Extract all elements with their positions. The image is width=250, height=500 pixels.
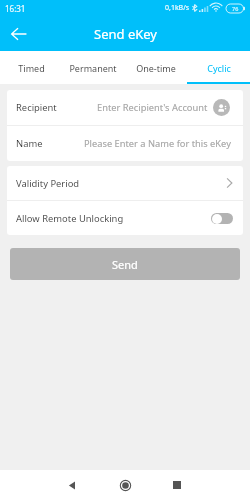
- button[interactable]: Pick contact: [213, 99, 230, 116]
- button[interactable]: Name: [7, 126, 243, 161]
- staticText: Send eKey: [94, 25, 157, 43]
- button[interactable]: Recents: [162, 470, 192, 500]
- staticText: One-time: [136, 62, 176, 74]
- button[interactable]: Validity Period: [7, 166, 243, 200]
- staticText: 76: [232, 5, 239, 12]
- button[interactable]: Back: [0, 16, 36, 51]
- button[interactable]: Send: [10, 248, 240, 280]
- staticText: Name: [16, 137, 43, 150]
- staticText: Permanent: [69, 62, 117, 74]
- staticText: Validity Period: [16, 177, 80, 190]
- staticText: Cyclic: [207, 62, 231, 74]
- staticText: Enter Recipient's Account: [97, 101, 208, 114]
- staticText: Send: [112, 257, 138, 272]
- button[interactable]: Home: [110, 470, 140, 500]
- button[interactable]: Allow Remote Unlocking: [7, 201, 243, 235]
- button[interactable]: Timed: [0, 51, 62, 84]
- button[interactable]: Cyclic: [187, 51, 250, 84]
- button[interactable]: Allow Remote Unlocking toggle: [211, 213, 233, 224]
- button[interactable]: Recipient: [7, 90, 243, 125]
- staticText: Timed: [18, 62, 45, 74]
- staticText: Recipient: [16, 101, 57, 114]
- button[interactable]: One-time: [124, 51, 187, 84]
- button[interactable]: Back: [57, 470, 87, 500]
- staticText: 16:31: [5, 3, 26, 14]
- staticText: 0,1kB/s: [165, 3, 190, 13]
- staticText: Please Enter a Name for this eKey: [84, 137, 231, 150]
- button[interactable]: Permanent: [62, 51, 124, 84]
- staticText: Allow Remote Unlocking: [16, 212, 124, 225]
